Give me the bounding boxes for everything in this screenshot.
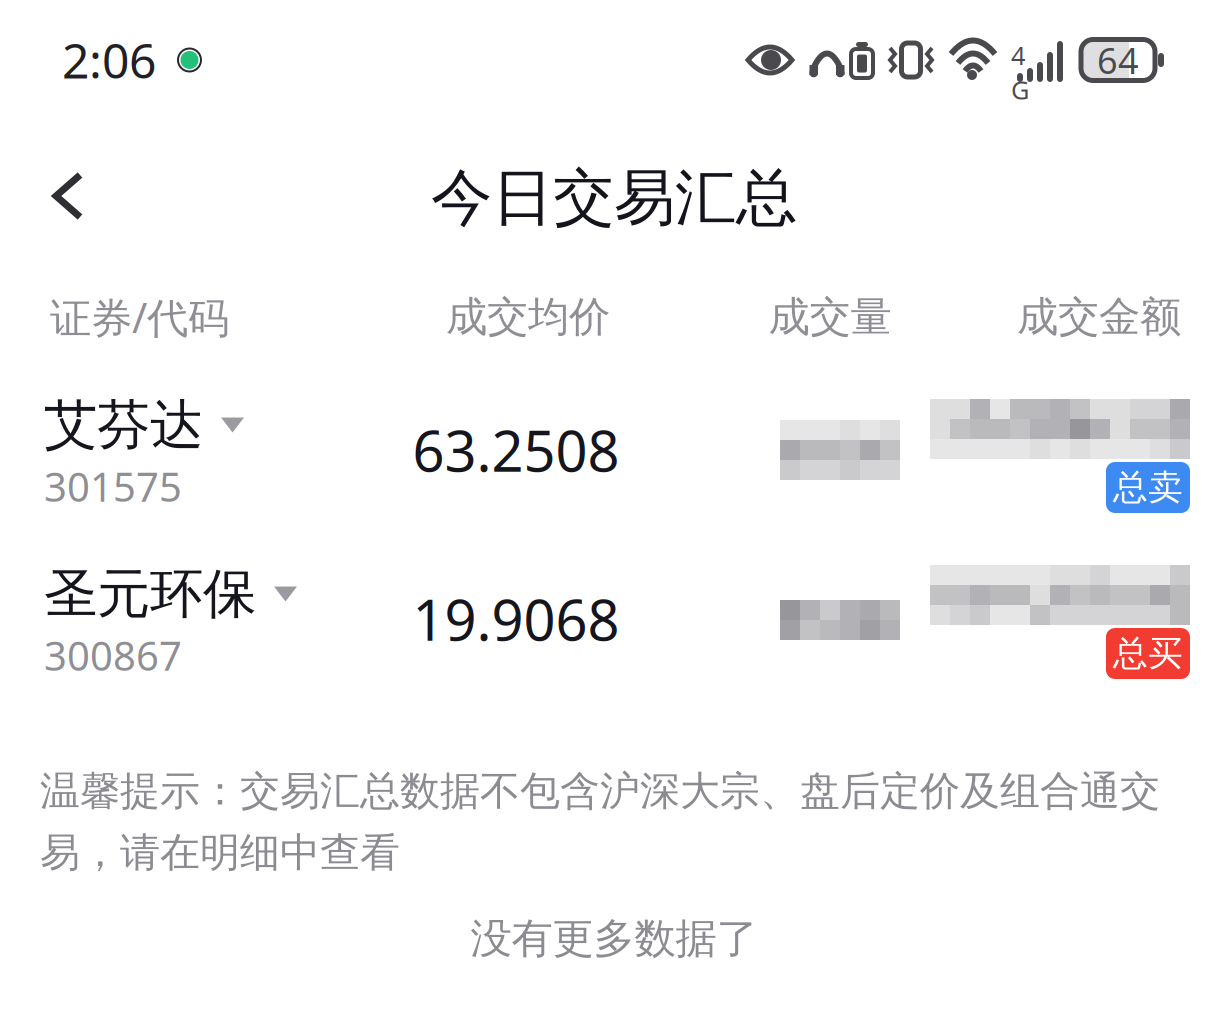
button[interactable]: 总卖: [1106, 462, 1190, 513]
staticText: 301575: [44, 459, 182, 513]
staticText: 63.2508: [412, 412, 619, 488]
staticText: 艾芬达: [44, 391, 203, 459]
staticText: 没有更多数据了: [470, 913, 757, 965]
staticText: 圣元环保: [44, 560, 256, 628]
staticText: 总买: [1113, 632, 1183, 675]
button[interactable]: 艾芬达: [0, 372, 1228, 541]
staticText: 今日交易汇总: [431, 159, 797, 237]
button[interactable]: 圣元环保: [0, 541, 1228, 710]
staticText: 64: [1097, 35, 1139, 84]
staticText: 4G: [1011, 38, 1029, 107]
staticText: 成交量: [768, 291, 891, 343]
staticText: 2:06: [62, 27, 156, 93]
staticText: 总卖: [1113, 466, 1183, 509]
button[interactable]: 总买: [1106, 628, 1190, 679]
button[interactable]: Back: [18, 146, 118, 246]
staticText: 温馨提示：交易汇总数据不包含沪深大宗、盘后定价及组合通交易，请在明细中查看: [40, 766, 1160, 878]
staticText: 成交金额: [1017, 291, 1181, 343]
staticText: 成交均价: [446, 291, 610, 343]
staticText: 300867: [44, 628, 182, 682]
staticText: 证券/代码: [50, 289, 229, 345]
staticText: 19.9068: [412, 581, 619, 657]
